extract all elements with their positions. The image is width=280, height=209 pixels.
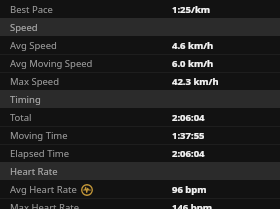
staticText: Avg Speed xyxy=(10,39,57,52)
staticText: Moving Time xyxy=(10,129,68,142)
button[interactable]: Max Heart Rate xyxy=(0,198,280,209)
staticText: 4.6 km/h xyxy=(172,39,214,52)
staticText: Max Heart Rate xyxy=(10,201,80,209)
button[interactable]: Moving Time xyxy=(0,126,280,144)
staticText: 42.3 km/h xyxy=(172,75,219,88)
staticText: Elapsed Time xyxy=(10,147,70,160)
staticText: 2:06:04 xyxy=(172,111,205,124)
staticText: Best Pace xyxy=(10,3,53,16)
button[interactable]: Avg Heart Rate xyxy=(0,180,280,198)
staticText: 6.0 km/h xyxy=(172,57,214,70)
staticText: 1:37:55 xyxy=(172,129,205,142)
button[interactable]: Best Pace xyxy=(0,0,280,18)
staticText: Avg Heart Rate xyxy=(10,183,77,196)
button[interactable]: Max Speed xyxy=(0,72,280,90)
button[interactable]: Elapsed Time xyxy=(0,144,280,162)
button[interactable]: Avg Moving Speed xyxy=(0,54,280,72)
staticText: Speed xyxy=(10,21,38,34)
other: Heart rate source xyxy=(81,184,93,196)
staticText: Total xyxy=(10,111,32,124)
staticText: 2:06:04 xyxy=(172,147,205,160)
staticText: 146 bpm xyxy=(172,201,213,209)
staticText: Heart Rate xyxy=(10,165,58,178)
staticText: Max Speed xyxy=(10,75,60,88)
staticText: 96 bpm xyxy=(172,183,207,196)
button[interactable]: Total xyxy=(0,108,280,126)
staticText: Timing xyxy=(10,93,41,106)
button[interactable]: Avg Speed xyxy=(0,36,280,54)
staticText: Avg Moving Speed xyxy=(10,57,93,70)
staticText: 1:25/km xyxy=(172,3,211,16)
